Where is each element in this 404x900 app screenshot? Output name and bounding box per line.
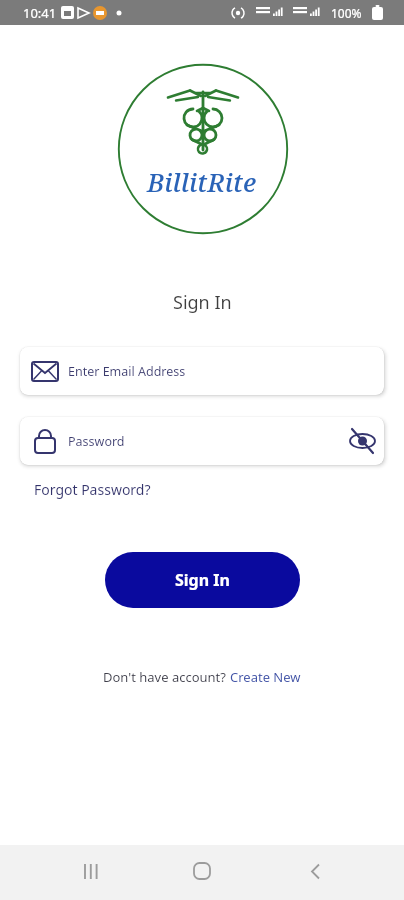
staticText: Sign In [175,569,230,591]
button[interactable]: Enter Email Address [20,347,384,395]
button[interactable] [71,851,111,891]
staticText: Don't have account? [103,668,230,686]
button[interactable] [182,851,222,891]
staticText: Password [68,433,125,450]
staticText: Create New [230,668,301,686]
button[interactable]: Forgot Password? [34,480,151,499]
staticText: Sign In [173,290,232,315]
staticText: Enter Email Address [68,363,186,380]
button[interactable]: Password [20,417,384,465]
staticText: 100% [331,5,362,21]
staticText: BillitRite [147,164,257,199]
button[interactable]: Sign In [105,552,300,608]
staticText: 10:41 [23,4,57,22]
button[interactable] [342,421,382,461]
button[interactable] [295,851,335,891]
button[interactable]: Don't have account? [0,668,404,686]
